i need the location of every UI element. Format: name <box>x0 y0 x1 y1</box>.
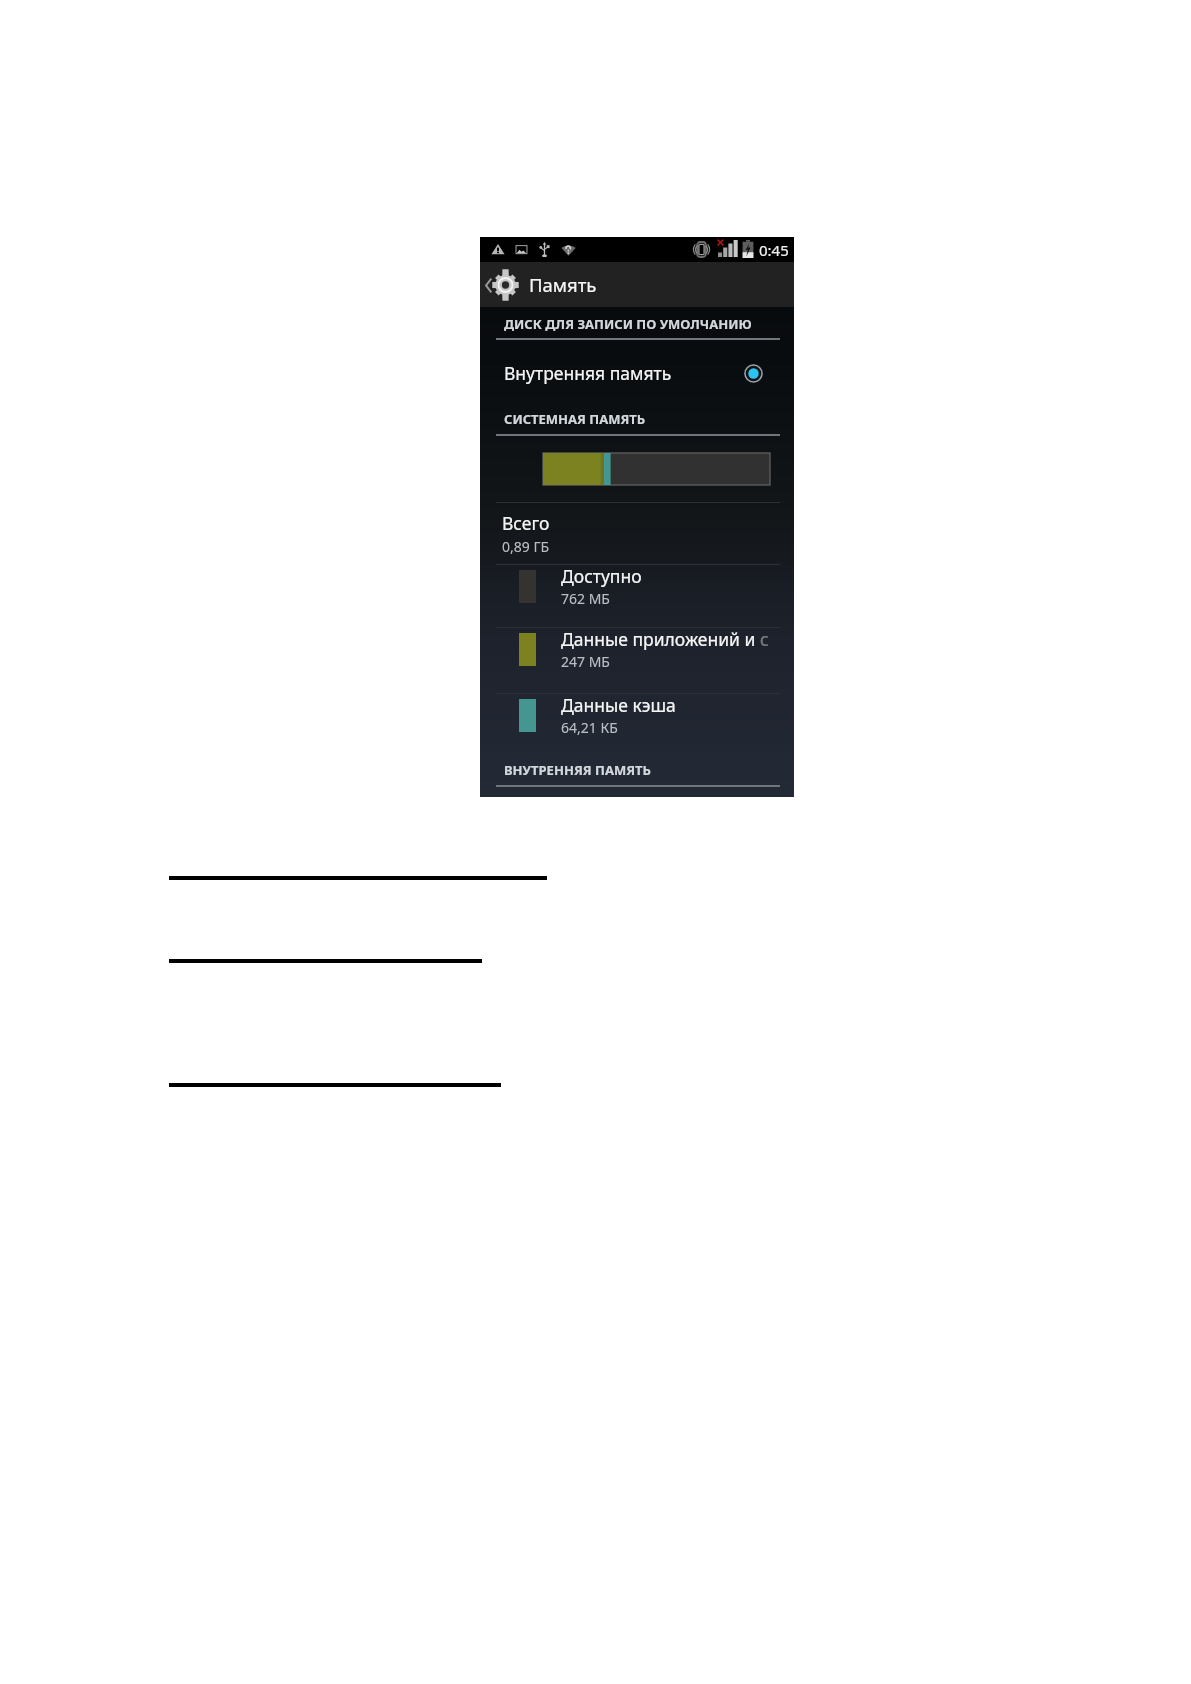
staticText: ДИСК ДЛЯ ЗАПИСИ ПО УМОЛЧАНИЮ <box>504 315 752 333</box>
staticText: Всего <box>502 511 550 535</box>
staticText: ВНУТРЕННЯЯ ПАМЯТЬ <box>504 761 651 779</box>
button[interactable]: Данные приложений и <box>480 627 794 690</box>
staticText: Память <box>529 272 597 297</box>
button[interactable]: Данные кэша <box>480 693 794 756</box>
staticText: 64,21 КБ <box>561 718 618 737</box>
button[interactable]: Всего <box>480 503 794 564</box>
staticText: 0:45 <box>759 240 789 260</box>
button[interactable]: Внутренняя память <box>480 347 794 399</box>
staticText: 0,89 ГБ <box>502 537 550 556</box>
staticText: с <box>760 627 769 651</box>
staticText: Данные приложений и <box>561 627 760 651</box>
staticText: Доступно <box>561 564 642 588</box>
staticText: 247 МБ <box>561 652 610 671</box>
button[interactable]: Back <box>483 262 527 307</box>
staticText: Данные кэша <box>561 693 676 717</box>
staticText: Внутренняя память <box>504 361 672 385</box>
staticText: СИСТЕМНАЯ ПАМЯТЬ <box>504 410 646 428</box>
button[interactable]: Доступно <box>480 564 794 627</box>
staticText: 762 МБ <box>561 589 610 608</box>
